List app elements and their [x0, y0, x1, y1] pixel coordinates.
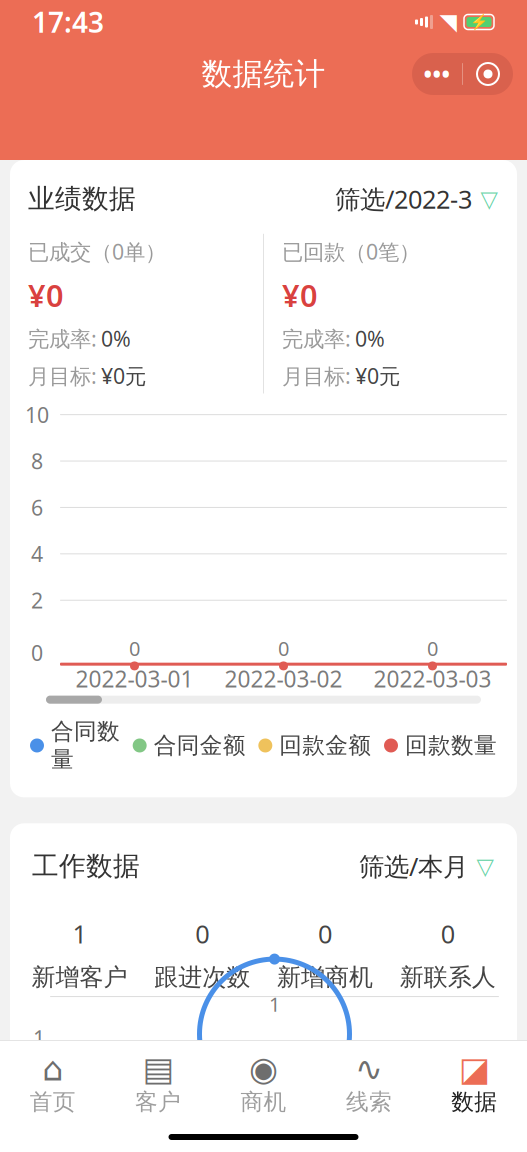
staticText: ⚡: [470, 14, 488, 30]
staticText: 0%: [355, 324, 385, 353]
button[interactable]: 更多: [412, 53, 462, 95]
button[interactable]: ◪: [422, 1049, 527, 1122]
staticText: 月目标:: [282, 362, 351, 390]
staticText: ¥0: [28, 275, 64, 315]
staticText: ◥: [439, 9, 456, 35]
staticText: ¥0元: [101, 362, 146, 390]
staticText: 完成率:: [282, 324, 351, 353]
staticText: 新联系人: [400, 963, 496, 992]
staticText: 17:43: [32, 3, 104, 41]
button[interactable]: 小程序胶囊: [463, 53, 513, 95]
staticText: 新增商机: [277, 963, 373, 992]
staticText: 2022-03-01: [75, 664, 193, 694]
button[interactable]: 筛选/2022-3: [335, 182, 499, 216]
staticText: 筛选/本月: [359, 849, 468, 883]
staticText: 数据: [451, 1088, 497, 1116]
staticText: ▽: [480, 186, 497, 212]
staticText: 8: [31, 447, 43, 475]
staticText: 首页: [30, 1088, 76, 1116]
staticText: ⌂: [42, 1050, 63, 1088]
staticText: 合同数量: [51, 718, 120, 773]
staticText: 0: [427, 635, 438, 661]
staticText: ▽: [476, 853, 493, 879]
staticText: 新增客户: [31, 963, 127, 992]
staticText: 0: [318, 917, 332, 951]
staticText: •••: [423, 59, 450, 89]
staticText: 4: [31, 540, 43, 568]
staticText: ∿: [355, 1050, 383, 1088]
staticText: 2: [31, 586, 43, 614]
staticText: ◉: [249, 1050, 278, 1088]
staticText: 回款金额: [279, 732, 371, 759]
staticText: 工作数据: [32, 850, 140, 883]
button[interactable]: 筛选/本月: [359, 849, 495, 883]
button[interactable]: ∿: [316, 1049, 422, 1122]
staticText: 6: [31, 493, 43, 522]
button[interactable]: ◉: [211, 1049, 316, 1122]
staticText: ▤: [143, 1050, 174, 1088]
staticText: 0%: [101, 324, 131, 353]
staticText: 2022-03-02: [224, 664, 342, 694]
staticText: 10: [25, 400, 49, 429]
staticText: 已回款（0笔）: [282, 237, 420, 266]
staticText: 已成交（0单）: [28, 237, 166, 266]
staticText: 0: [278, 635, 289, 661]
staticText: 商机: [240, 1088, 286, 1116]
staticText: 业绩数据: [28, 182, 136, 215]
staticText: ¥0元: [355, 362, 400, 390]
button[interactable]: ▤: [105, 1049, 211, 1122]
staticText: ◪: [459, 1050, 490, 1088]
staticText: 2022-03-03: [373, 664, 491, 694]
staticText: 跟进次数: [154, 963, 250, 992]
staticText: 数据统计: [201, 55, 325, 93]
staticText: 客户: [135, 1088, 181, 1116]
staticText: 0: [441, 917, 455, 951]
staticText: 1: [72, 917, 86, 951]
staticText: 0: [195, 917, 209, 951]
staticText: 完成率:: [28, 324, 97, 353]
staticText: 筛选/2022-3: [335, 182, 472, 216]
staticText: 月目标:: [28, 362, 97, 390]
staticText: 0: [31, 638, 43, 667]
staticText: 1: [33, 1024, 45, 1052]
staticText: 0: [129, 635, 140, 661]
staticText: 回款数量: [405, 732, 497, 759]
staticText: 合同金额: [154, 732, 246, 759]
staticText: ¥0: [282, 275, 318, 315]
staticText: 线索: [346, 1088, 392, 1116]
button[interactable]: ⌂: [0, 1049, 105, 1122]
staticText: 1: [269, 991, 280, 1017]
